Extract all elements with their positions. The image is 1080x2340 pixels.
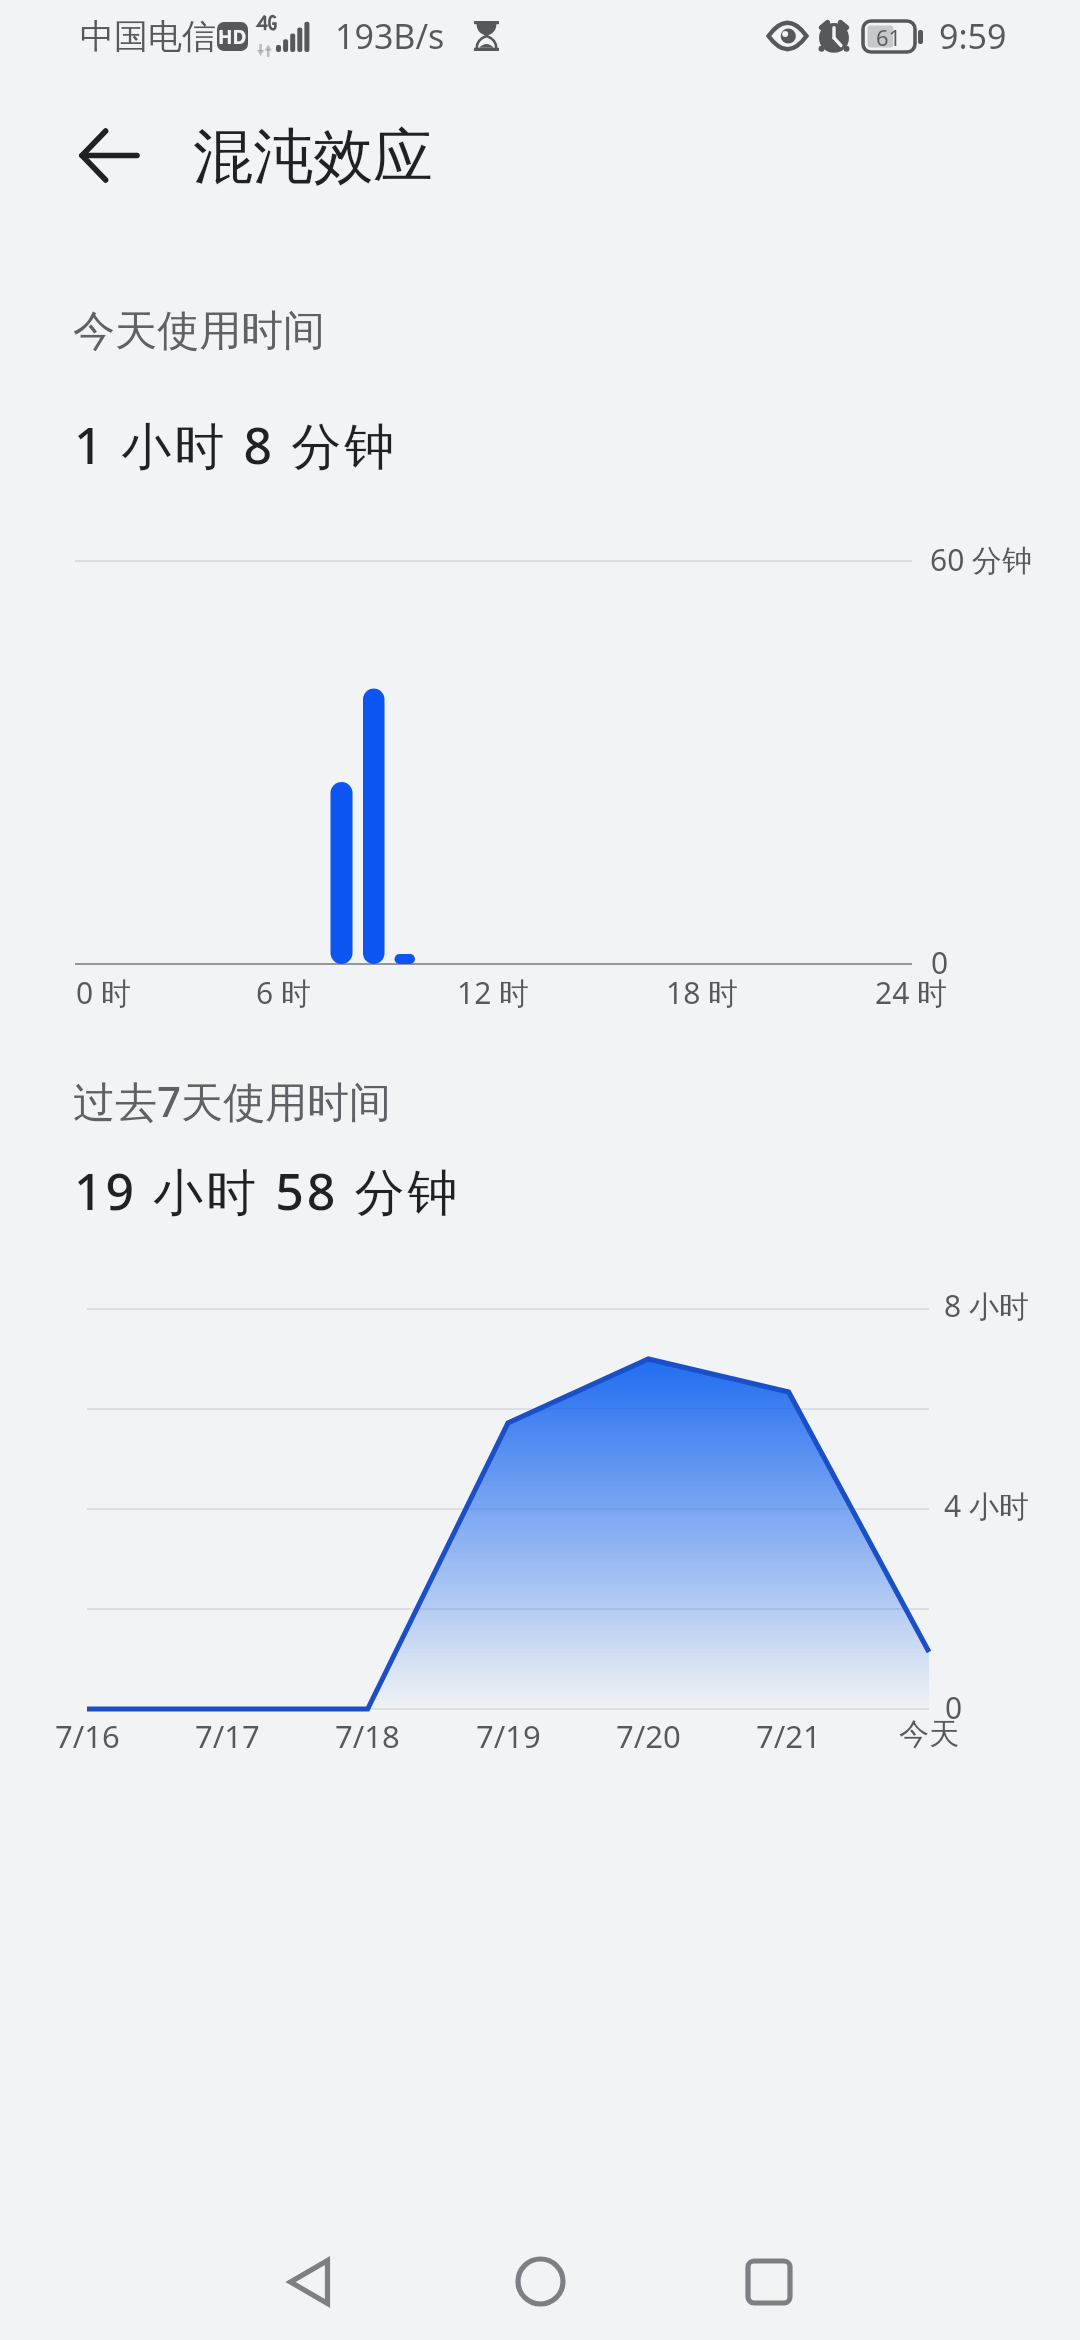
button[interactable]: Back [61,108,155,202]
staticText: HD [218,24,247,50]
staticText: 0 [945,1687,963,1728]
staticText: 0 时 [76,972,131,1013]
button[interactable]: Recent apps [703,2216,834,2340]
staticText: 7/19 [476,1715,541,1757]
staticText: 7/16 [55,1715,120,1757]
staticText: 7/17 [195,1715,260,1757]
staticText: 7/20 [616,1715,681,1757]
staticText: 19 小时 58 分钟 [74,1157,461,1225]
staticText: 8 小时 [944,1285,1029,1326]
staticText: 9:59 [939,13,1007,59]
staticText: 混沌效应 [193,119,433,195]
staticText: 7/18 [335,1715,400,1757]
staticText: 24 时 [875,972,948,1013]
staticText: 6 时 [256,972,311,1013]
staticText: 61 [876,22,902,52]
staticText: 过去7天使用时间 [73,1072,392,1129]
staticText: 中国电信 [80,15,216,58]
staticText: 0 [931,942,949,983]
staticText: 12 时 [457,972,530,1013]
button[interactable]: Home [475,2216,606,2340]
staticText: 今天使用时间 [73,305,325,358]
staticText: 18 时 [666,972,739,1013]
staticText: 1 小时 8 分钟 [74,411,398,479]
button[interactable]: Back [243,2216,374,2340]
staticText: 4 小时 [944,1485,1029,1526]
staticText: 60 分钟 [930,539,1033,580]
staticText: 193B/s [335,13,445,59]
staticText: 7/21 [756,1715,821,1757]
staticText: 今天 [899,1715,959,1753]
